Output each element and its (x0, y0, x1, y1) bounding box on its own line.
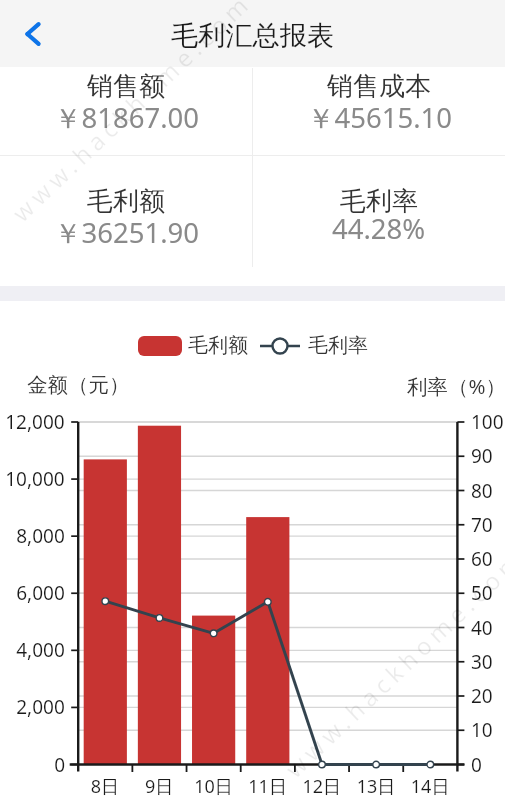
staticText: 毛利汇总报表 (171, 19, 335, 53)
staticText: 毛利额 (188, 333, 248, 358)
staticText: ￥81867.00 (54, 99, 199, 137)
button[interactable]: 销售额 (0, 70, 252, 141)
staticText: 毛利率 (308, 333, 368, 358)
staticText: ￥36251.90 (54, 214, 199, 252)
button[interactable]: 毛利额 (0, 185, 252, 256)
staticText: 毛利额 (87, 185, 165, 218)
staticText: 44.28% (332, 210, 426, 247)
button[interactable]: Back (10, 11, 56, 57)
button[interactable]: 毛利率 (253, 185, 505, 255)
staticText: 销售额 (87, 70, 165, 103)
button[interactable]: 销售成本 (253, 70, 505, 141)
staticText: ￥45615.10 (307, 99, 452, 137)
staticText: 毛利率 (340, 185, 418, 218)
staticText: 销售成本 (327, 70, 431, 103)
